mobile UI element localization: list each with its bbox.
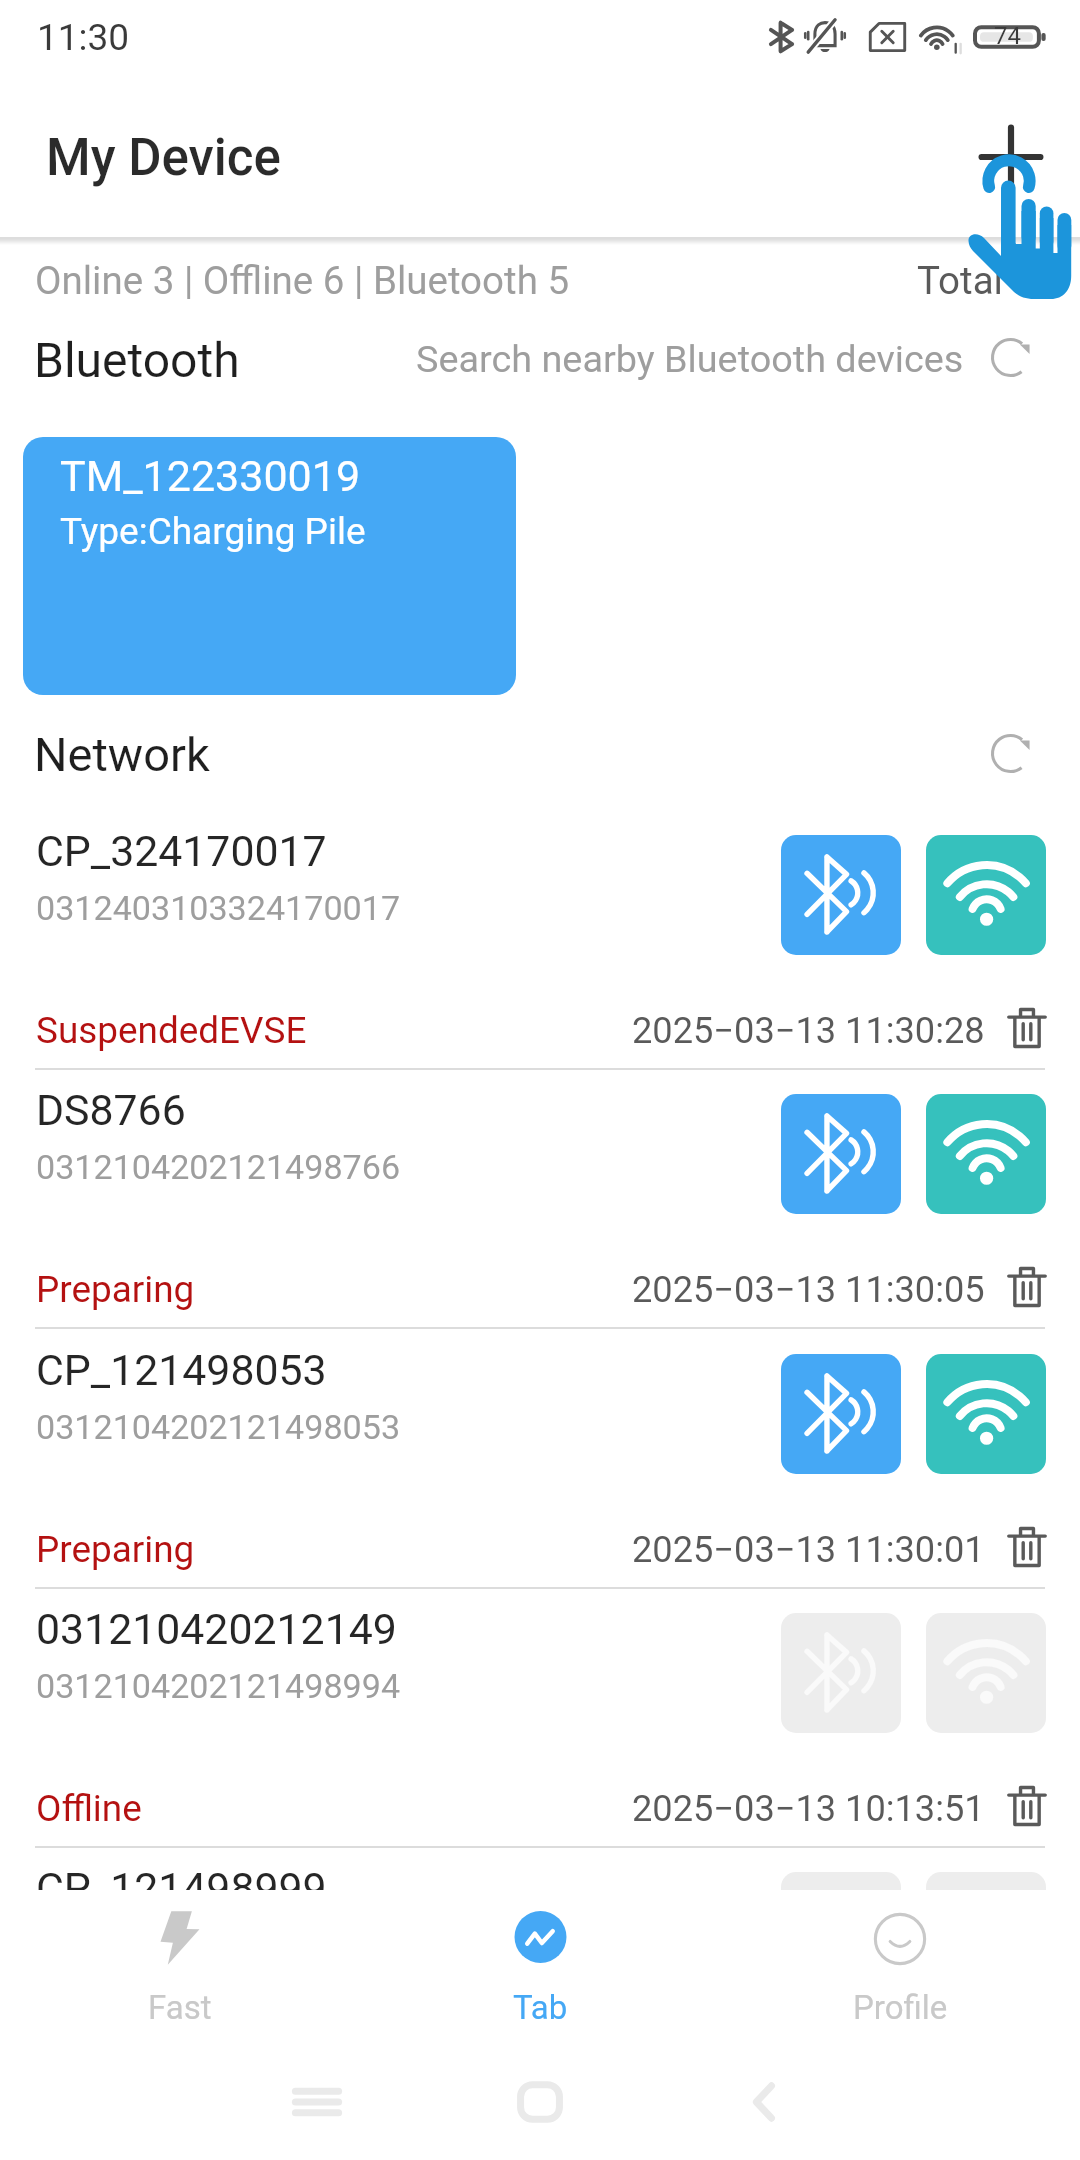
staticText: 2025−03−13 11:30:01	[632, 1528, 985, 1570]
staticText: My Device	[46, 128, 281, 188]
staticText: CP_121498999	[36, 1863, 327, 1890]
staticText: Network	[34, 727, 210, 782]
staticText: 0312403103324170017	[36, 888, 401, 928]
staticText: SuspendedEVSE	[36, 1009, 307, 1052]
button[interactable]: Wifi connect	[926, 1872, 1046, 1890]
staticText: 031210420212149	[36, 1604, 397, 1654]
button[interactable]: Refresh Bluetooth	[980, 327, 1041, 388]
button[interactable]: Delete	[1008, 1266, 1046, 1308]
staticText: Preparing	[36, 1528, 195, 1571]
button[interactable]: Tab	[360, 1890, 720, 2050]
button[interactable]: Delete	[1008, 1785, 1046, 1827]
staticText: 74	[994, 22, 1021, 50]
staticText: 0312104202121498994	[36, 1666, 401, 1706]
button[interactable]: Delete	[1008, 1007, 1046, 1049]
staticText: 0312104202121498053	[36, 1407, 401, 1447]
button[interactable]: Bluetooth connect	[781, 1354, 901, 1474]
staticText: 11:30	[37, 16, 130, 59]
button[interactable]: Bluetooth connect	[781, 835, 901, 955]
button[interactable]: 031210420212149	[0, 1587, 1080, 1848]
staticText: TM_122330019	[60, 451, 361, 501]
button[interactable]: DS8766	[0, 1068, 1080, 1329]
staticText: DS8766	[36, 1085, 186, 1135]
staticText: Search nearby Bluetooth devices	[416, 337, 964, 381]
button[interactable]: Wifi connect	[926, 1354, 1046, 1474]
staticText: Bluetooth	[34, 332, 240, 388]
button[interactable]: Profile	[720, 1890, 1080, 2050]
button[interactable]: Refresh network	[980, 723, 1041, 784]
button[interactable]: CP_121498999	[0, 1846, 1080, 1890]
button[interactable]: TM_122330019	[23, 437, 516, 695]
button[interactable]: Add device	[967, 113, 1055, 201]
button[interactable]: Bluetooth connect	[781, 1094, 901, 1214]
button[interactable]: Delete	[1008, 1526, 1046, 1568]
button[interactable]: CP_324170017	[0, 809, 1080, 1070]
button[interactable]: Wifi connect	[926, 1094, 1046, 1214]
staticText: 0312104202121498766	[36, 1147, 401, 1187]
staticText: 2025−03−13 10:13:51	[632, 1787, 985, 1829]
staticText: Fast	[148, 1988, 212, 2027]
staticText: CP_324170017	[36, 826, 327, 876]
staticText: Tab	[513, 1988, 568, 2027]
staticText: 2025−03−13 11:30:05	[632, 1268, 985, 1310]
staticText: Profile	[853, 1988, 948, 2027]
staticText: Offline	[36, 1787, 142, 1830]
staticText: Total	[917, 258, 1003, 303]
button[interactable]: Wifi connect	[926, 1613, 1046, 1733]
staticText: CP_121498053	[36, 1345, 327, 1395]
staticText: Online 3 | Offline 6 | Bluetooth 5	[35, 258, 570, 303]
staticText: Type:Charging Pile	[60, 510, 366, 553]
button[interactable]: Bluetooth connect	[781, 1872, 901, 1890]
staticText: Preparing	[36, 1268, 195, 1311]
button[interactable]: Fast	[0, 1890, 360, 2050]
button[interactable]: Bluetooth connect	[781, 1613, 901, 1733]
button[interactable]: CP_121498053	[0, 1328, 1080, 1589]
staticText: 2025−03−13 11:30:28	[632, 1009, 985, 1051]
button[interactable]: Wifi connect	[926, 835, 1046, 955]
